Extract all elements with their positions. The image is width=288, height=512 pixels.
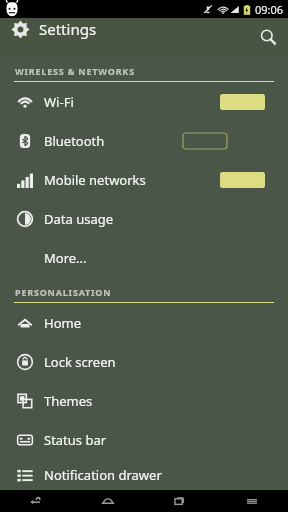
button[interactable]: Home [72, 490, 144, 512]
staticText: Home [44, 314, 81, 332]
button[interactable]: Bluetooth [0, 121, 288, 160]
other: Settings [9, 18, 31, 40]
staticText: Data usage [44, 210, 114, 228]
staticText: Bluetooth [44, 132, 105, 150]
button[interactable]: Recents [144, 490, 216, 512]
button[interactable]: Status bar [0, 420, 288, 459]
staticText: Status bar [44, 431, 107, 449]
staticText: PERSONALISATION [15, 286, 112, 298]
button[interactable]: Menu [216, 490, 288, 512]
staticText: Themes [44, 392, 93, 410]
button[interactable]: Lock screen [0, 342, 288, 381]
button[interactable]: Wi-Fi [0, 82, 288, 121]
staticText: Mobile networks [44, 171, 146, 189]
button[interactable]: More... [0, 238, 288, 277]
staticText: 09:06 [255, 2, 284, 17]
staticText: Lock screen [44, 353, 116, 371]
button[interactable]: Mobile networks [0, 160, 288, 199]
button[interactable]: Back [0, 490, 72, 512]
staticText: Settings [39, 19, 97, 39]
staticText: Notification drawer [44, 466, 162, 484]
button[interactable]: Home [0, 303, 288, 342]
button[interactable]: Data usage [0, 199, 288, 238]
staticText: Wi-Fi [44, 93, 74, 111]
button[interactable]: Search [248, 18, 288, 56]
button[interactable]: Notification drawer [0, 459, 288, 490]
staticText: WIRELESS & NETWORKS [15, 65, 135, 77]
staticText: More... [44, 249, 87, 267]
button[interactable]: Themes [0, 381, 288, 420]
